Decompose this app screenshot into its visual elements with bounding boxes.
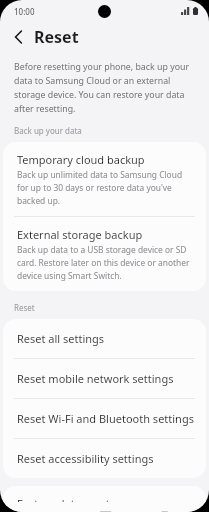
button[interactable]: Temporary cloud backup: [3, 142, 206, 216]
button[interactable]: Reset accessibility settings: [3, 439, 206, 478]
button[interactable]: Back: [6, 25, 30, 49]
button[interactable]: Reset Wi-Fi and Bluetooth settings: [3, 399, 206, 438]
staticText: External storage backup: [17, 227, 143, 242]
staticText: Reset: [34, 26, 79, 48]
button[interactable]: Reset all settings: [3, 319, 206, 358]
staticText: Reset Wi-Fi and Bluetooth settings: [17, 411, 194, 426]
button[interactable]: Reset mobile network settings: [3, 359, 206, 398]
staticText: Temporary cloud backup: [17, 152, 145, 167]
staticText: Reset accessibility settings: [17, 451, 154, 466]
button[interactable]: External storage backup: [3, 217, 206, 291]
staticText: 10:00: [14, 6, 35, 17]
staticText: Reset mobile network settings: [17, 371, 174, 386]
staticText: Back up your data: [14, 125, 82, 136]
button[interactable]: Factory data reset: [3, 486, 206, 512]
staticText: Back up data to a USB storage device or …: [17, 244, 194, 281]
staticText: Reset: [14, 302, 35, 313]
staticText: Reset all settings: [17, 331, 105, 346]
staticText: Back up unlimited data to Samsung Cloud …: [17, 169, 194, 206]
staticText: Before resetting your phone, back up you…: [14, 61, 197, 114]
staticText: Factory data reset: [17, 496, 110, 502]
